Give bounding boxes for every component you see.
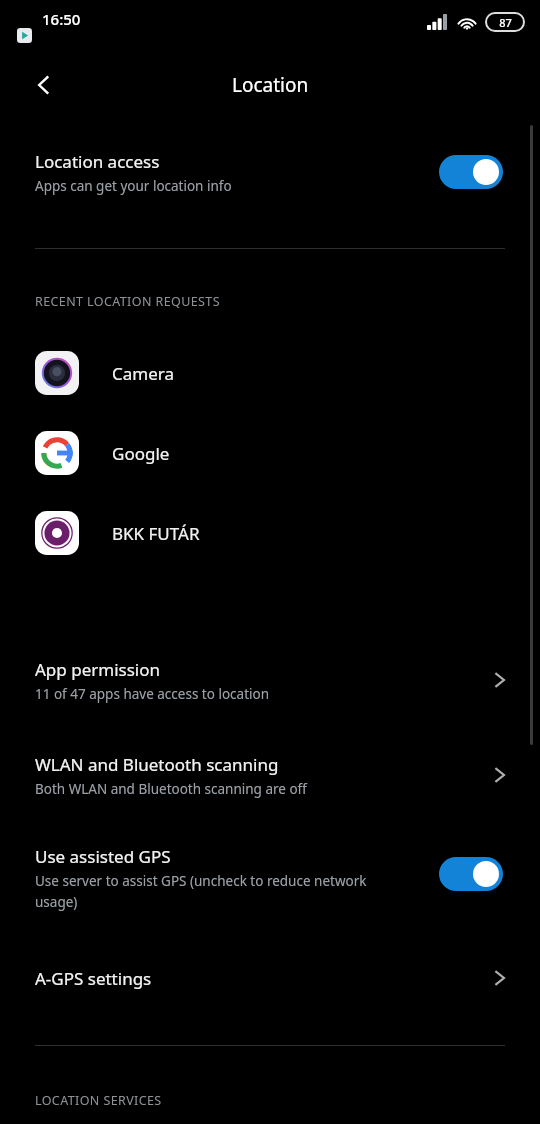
staticText: Camera [112, 362, 174, 385]
staticText: 87 [499, 15, 512, 30]
button[interactable]: Camera [0, 345, 540, 401]
button[interactable]: BKK FUTÁR [0, 505, 540, 561]
staticText: 11 of 47 apps have access to location [35, 685, 269, 703]
staticText: Google [112, 442, 170, 465]
button[interactable]: Use assisted GPS [0, 828, 540, 928]
staticText: Location [232, 72, 309, 98]
staticText: Both WLAN and Bluetooth scanning are off [35, 780, 307, 798]
staticText: Location access [35, 150, 160, 173]
staticText: BKK FUTÁR [112, 522, 200, 545]
staticText: Use server to assist GPS (uncheck to red… [35, 872, 375, 911]
button[interactable]: Toggle [439, 857, 503, 891]
button[interactable]: App permission [0, 640, 540, 720]
button[interactable]: Location access [0, 134, 540, 210]
staticText: RECENT LOCATION REQUESTS [35, 293, 220, 310]
button[interactable]: Back [24, 65, 64, 105]
button[interactable]: Toggle [439, 155, 503, 189]
button[interactable]: Google [0, 425, 540, 481]
staticText: LOCATION SERVICES [35, 1092, 162, 1109]
staticText: WLAN and Bluetooth scanning [35, 753, 279, 776]
staticText: Use assisted GPS [35, 845, 171, 868]
staticText: A-GPS settings [35, 967, 152, 990]
staticText: 16:50 [42, 9, 81, 29]
button[interactable]: WLAN and Bluetooth scanning [0, 735, 540, 815]
button[interactable]: A-GPS settings [0, 945, 540, 1011]
staticText: Apps can get your location info [35, 177, 232, 195]
staticText: App permission [35, 658, 161, 681]
